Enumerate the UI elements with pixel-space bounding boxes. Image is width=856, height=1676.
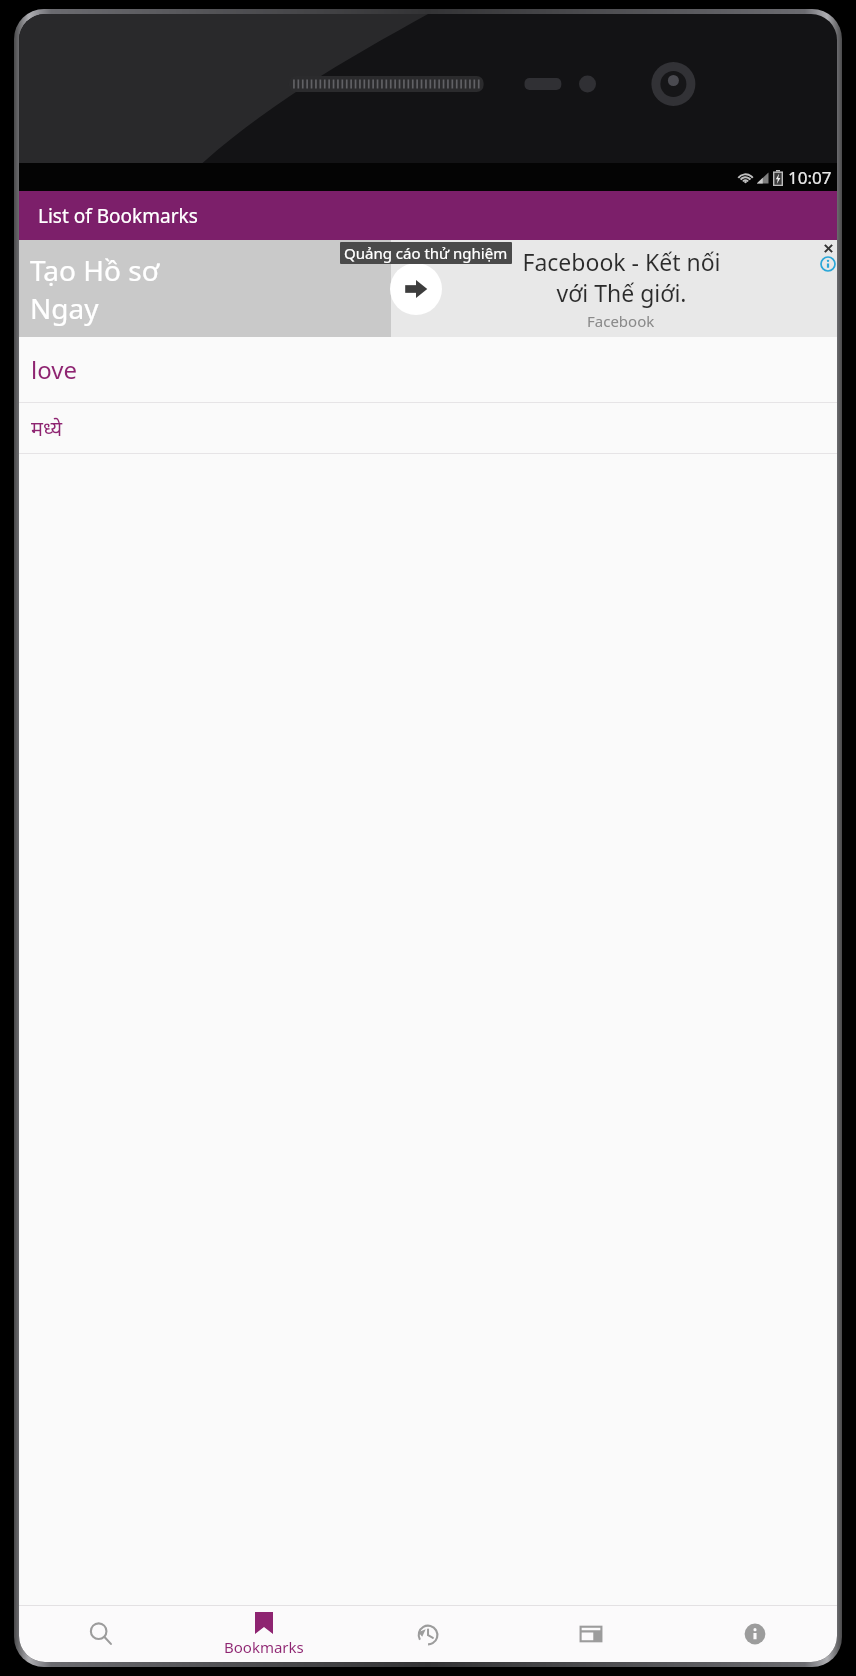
staticText: Quảng cáo thử nghiệm — [344, 243, 508, 263]
button[interactable]: Bookmarks — [182, 1606, 345, 1662]
staticText: List of Bookmarks — [38, 203, 198, 229]
staticText: Bookmarks — [224, 1637, 304, 1657]
button[interactable]: Ad information — [821, 257, 835, 271]
button[interactable]: Close ad — [822, 242, 835, 255]
staticText: Ngay — [30, 289, 99, 327]
staticText: Facebook - Kết nối — [522, 246, 721, 277]
button[interactable]: Tabs — [509, 1606, 673, 1662]
button[interactable]: love — [19, 337, 837, 402]
button[interactable]: History — [345, 1606, 509, 1662]
button[interactable]: मध्ये — [19, 403, 837, 453]
button[interactable]: Advertisement — [19, 240, 837, 337]
staticText: 10:07 — [788, 166, 832, 189]
staticText: love — [31, 353, 77, 386]
staticText: với Thế giới. — [556, 277, 687, 308]
staticText: Facebook — [587, 311, 655, 331]
button[interactable]: Search — [19, 1606, 182, 1662]
staticText: मध्ये — [31, 415, 63, 442]
button[interactable]: Info — [673, 1606, 837, 1662]
button[interactable]: Open ad — [390, 263, 442, 315]
staticText: Tạo Hồ sơ — [30, 251, 159, 289]
